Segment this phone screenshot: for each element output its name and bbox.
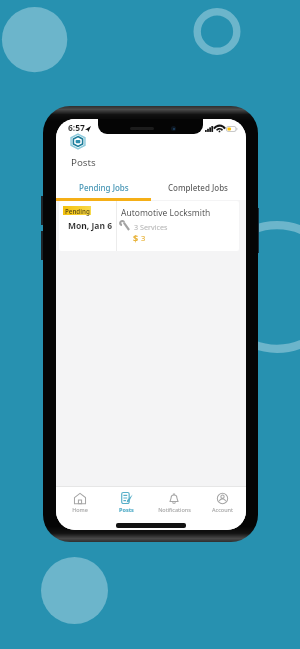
button[interactable]: Completed Jobs [151,180,246,201]
staticText: 3 Services [134,222,168,232]
button[interactable]: Pending Jobs [56,180,151,201]
staticText: Account [212,506,233,513]
staticText: Automotive Locksmith [121,207,211,219]
button[interactable]: Pending [59,201,239,251]
button[interactable]: Posts [103,487,150,518]
staticText: 3 [141,233,146,243]
staticText: $ [133,232,139,244]
staticText: Posts [119,506,134,513]
staticText: Pending Jobs [79,182,129,193]
staticText: Posts [71,156,96,169]
staticText: Completed Jobs [168,182,229,193]
staticText: Home [72,506,88,513]
staticText: Pending [65,207,90,215]
button[interactable]: Notifications [150,487,198,518]
button[interactable]: Home [56,487,103,518]
button[interactable]: Account [198,487,246,518]
staticText: Mon, Jan 6 [68,220,112,232]
staticText: Notifications [158,506,191,513]
staticText: 6:57 [68,122,85,134]
